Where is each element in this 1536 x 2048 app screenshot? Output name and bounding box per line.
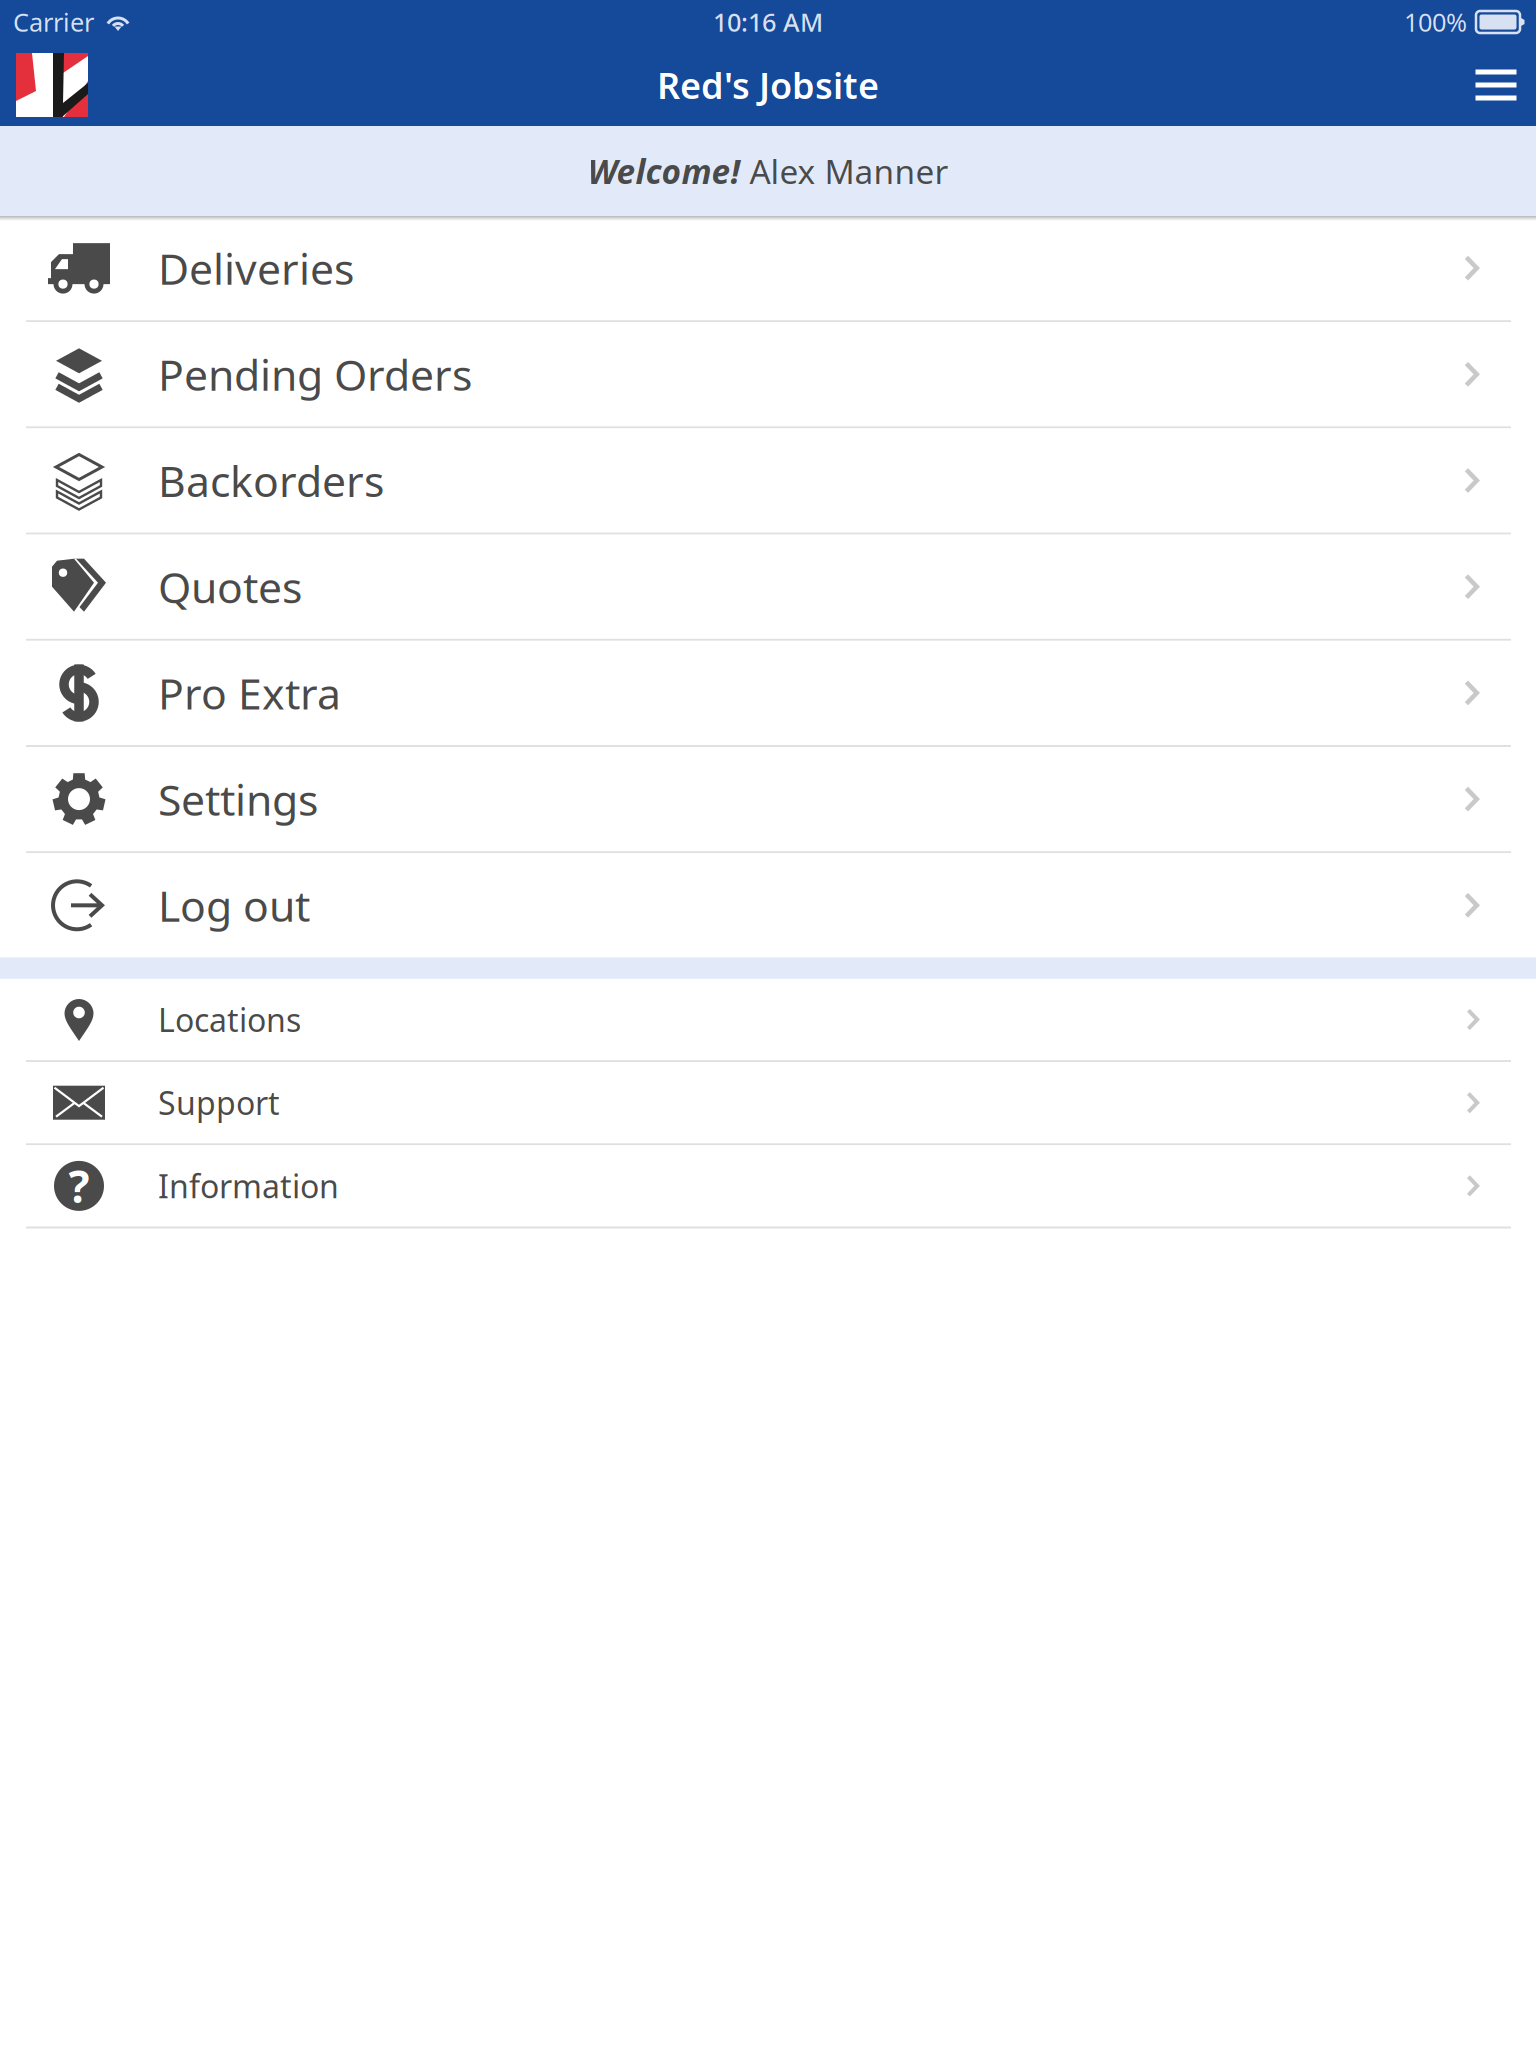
button[interactable]: Support — [0, 1062, 1536, 1143]
staticText: Locations — [158, 998, 301, 1041]
staticText: Red's Jobsite — [657, 61, 879, 109]
staticText: Welcome! — [587, 149, 740, 193]
staticText: Settings — [158, 771, 318, 827]
staticText: Information — [158, 1165, 339, 1207]
button[interactable]: Pending Orders — [0, 322, 1536, 426]
button[interactable]: Log out — [0, 853, 1536, 957]
button[interactable]: Settings — [0, 747, 1536, 851]
staticText: Deliveries — [158, 240, 354, 296]
button[interactable]: ? — [0, 1145, 1536, 1226]
button[interactable]: Quotes — [0, 535, 1536, 639]
button[interactable]: Pro Extra — [0, 641, 1536, 745]
staticText: Quotes — [158, 558, 302, 615]
staticText: 100% — [1404, 5, 1467, 39]
staticText: Pending Orders — [158, 346, 472, 403]
button[interactable]: Red's Jobsite home — [16, 53, 88, 117]
button[interactable]: Backorders — [0, 428, 1536, 533]
staticText: Support — [158, 1081, 280, 1124]
staticText: ? — [68, 1157, 89, 1215]
staticText: Backorders — [158, 452, 384, 509]
button[interactable]: Locations — [0, 979, 1536, 1060]
staticText: Carrier — [13, 5, 94, 39]
button[interactable]: Menu — [1465, 54, 1527, 116]
staticText: Pro Extra — [158, 665, 341, 721]
staticText: Alex Manner — [740, 149, 948, 193]
button[interactable]: Deliveries — [0, 216, 1536, 320]
staticText: 10:16 AM — [713, 5, 823, 39]
staticText: Log out — [158, 877, 310, 934]
